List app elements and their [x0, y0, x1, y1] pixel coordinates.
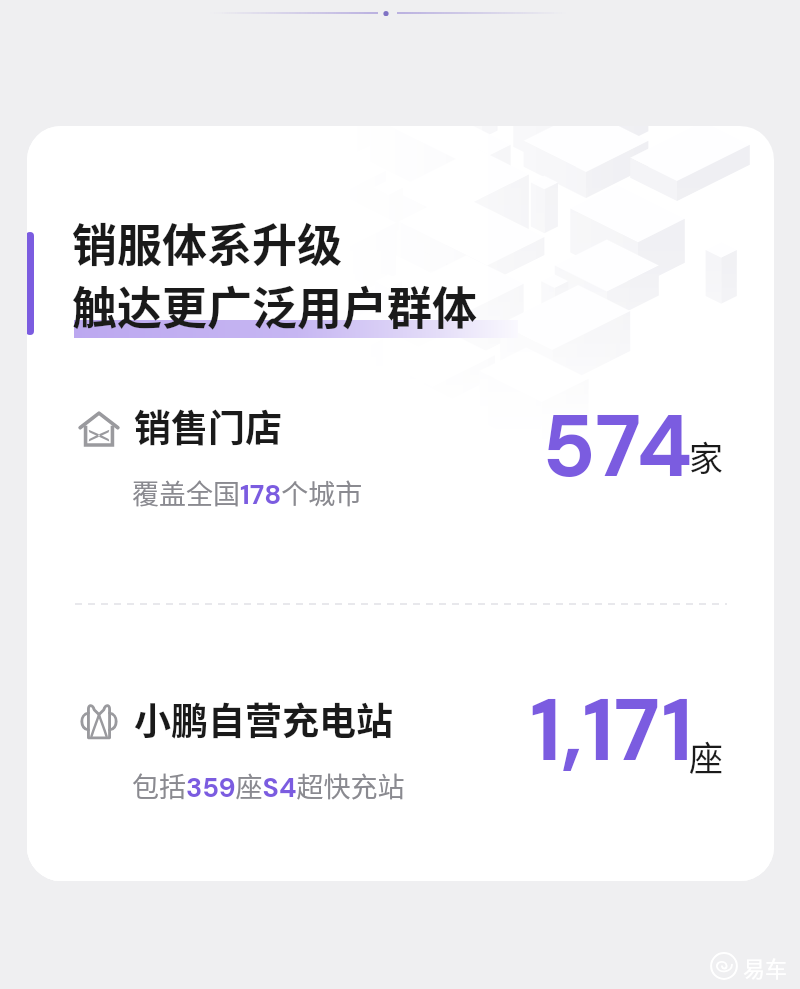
other: Sales store: [77, 407, 121, 451]
other: Charging station: [77, 700, 121, 744]
button[interactable]: Charging station: [27, 696, 774, 836]
staticText: 易车: [743, 951, 788, 983]
staticText: 包括359座S4超快充站: [132, 766, 405, 806]
staticText: 座: [689, 732, 723, 781]
staticText: 触达更广泛用户群体: [72, 273, 478, 338]
staticText: 家: [689, 432, 723, 481]
staticText: 574: [542, 391, 693, 503]
staticText: 销售门店: [134, 399, 282, 453]
staticText: 覆盖全国178个城市: [132, 473, 363, 513]
staticText: 1,171: [530, 675, 693, 787]
staticText: 小鹏自营充电站: [134, 692, 393, 746]
staticText: 销服体系升级: [72, 210, 343, 275]
button[interactable]: Sales store: [27, 403, 774, 543]
